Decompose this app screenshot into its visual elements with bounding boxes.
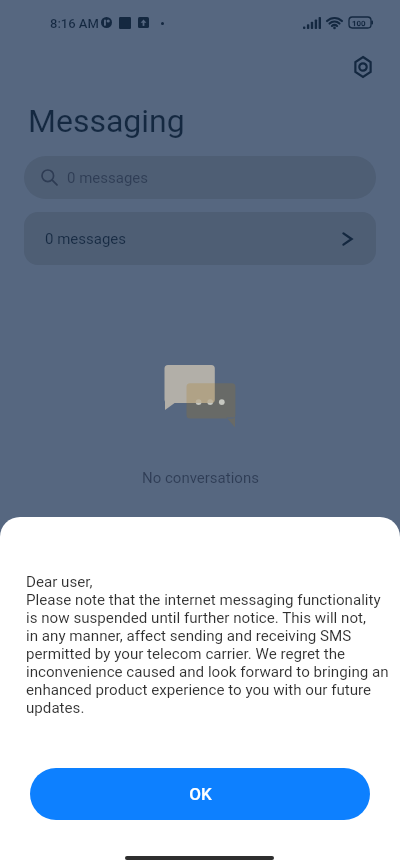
staticText: No conversations [142,469,259,487]
staticText: OK [189,784,212,804]
staticText: 100 [352,19,366,28]
button[interactable]: 0 messages [24,156,376,199]
staticText: 0 messages [67,169,149,187]
staticText: Messaging [28,102,185,140]
button[interactable]: 0 messages [24,212,376,265]
button[interactable]: Settings [345,49,381,85]
staticText: 8:16 AM [50,16,99,31]
staticText: 0 messages [45,230,127,248]
button[interactable]: OK [30,768,370,820]
staticText: Dear user, Please note that the internet… [26,573,394,717]
